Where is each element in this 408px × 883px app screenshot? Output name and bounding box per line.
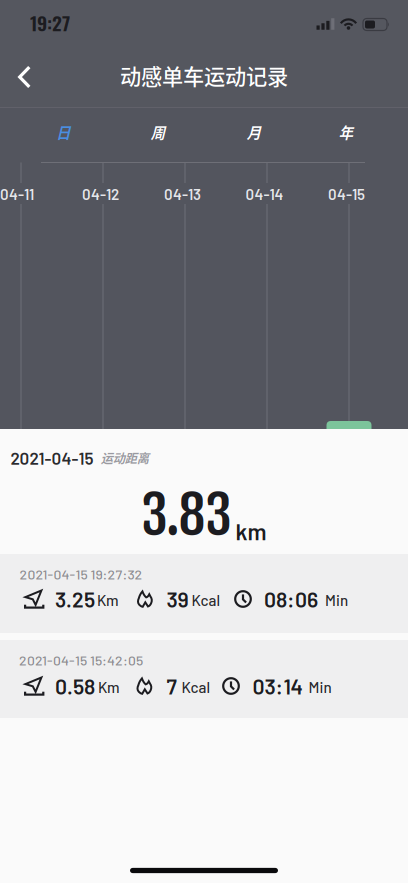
staticText: 04-14 (245, 185, 283, 203)
staticText: 运动距离 (102, 449, 150, 467)
staticText: 39 (166, 586, 188, 612)
staticText: 04-15 (328, 185, 365, 203)
staticText: Min (308, 678, 331, 696)
staticText: 2021-04-15 19:27:32 (19, 566, 142, 582)
staticText: 3.83 (141, 481, 231, 548)
staticText: 3.25 (55, 586, 95, 612)
button[interactable]: Back (7, 51, 42, 102)
staticText: 04-12 (82, 185, 119, 203)
button[interactable]: 2021-04-15 19:27:32 (0, 554, 408, 633)
staticText: 04-13 (164, 185, 201, 203)
staticText: Min (325, 591, 348, 609)
button[interactable]: 年 (333, 114, 363, 150)
staticText: km (235, 517, 266, 545)
staticText: 月 (249, 122, 263, 142)
staticText: 动感单车运动记录 (120, 60, 288, 91)
staticText: 日 (58, 122, 72, 142)
staticText: 0.58 (55, 673, 95, 699)
staticText: Km (98, 678, 120, 696)
staticText: 19:27 (30, 8, 70, 37)
staticText: 2021-04-15 (10, 448, 93, 468)
staticText: 7 (166, 673, 176, 699)
button[interactable]: 2021-04-15 15:42:05 (0, 640, 408, 718)
button[interactable]: 月 (241, 114, 271, 150)
staticText: 03:14 (252, 673, 302, 699)
staticText: Kcal (181, 678, 210, 696)
staticText: 年 (341, 122, 355, 142)
staticText: 2021-04-15 15:42:05 (19, 652, 143, 668)
button[interactable]: 日 (50, 114, 80, 150)
staticText: 周 (153, 122, 167, 142)
staticText: 08:06 (264, 586, 318, 612)
staticText: Km (97, 591, 119, 609)
button[interactable]: 周 (145, 114, 175, 150)
staticText: Kcal (191, 591, 220, 609)
staticText: 04-11 (0, 185, 34, 203)
